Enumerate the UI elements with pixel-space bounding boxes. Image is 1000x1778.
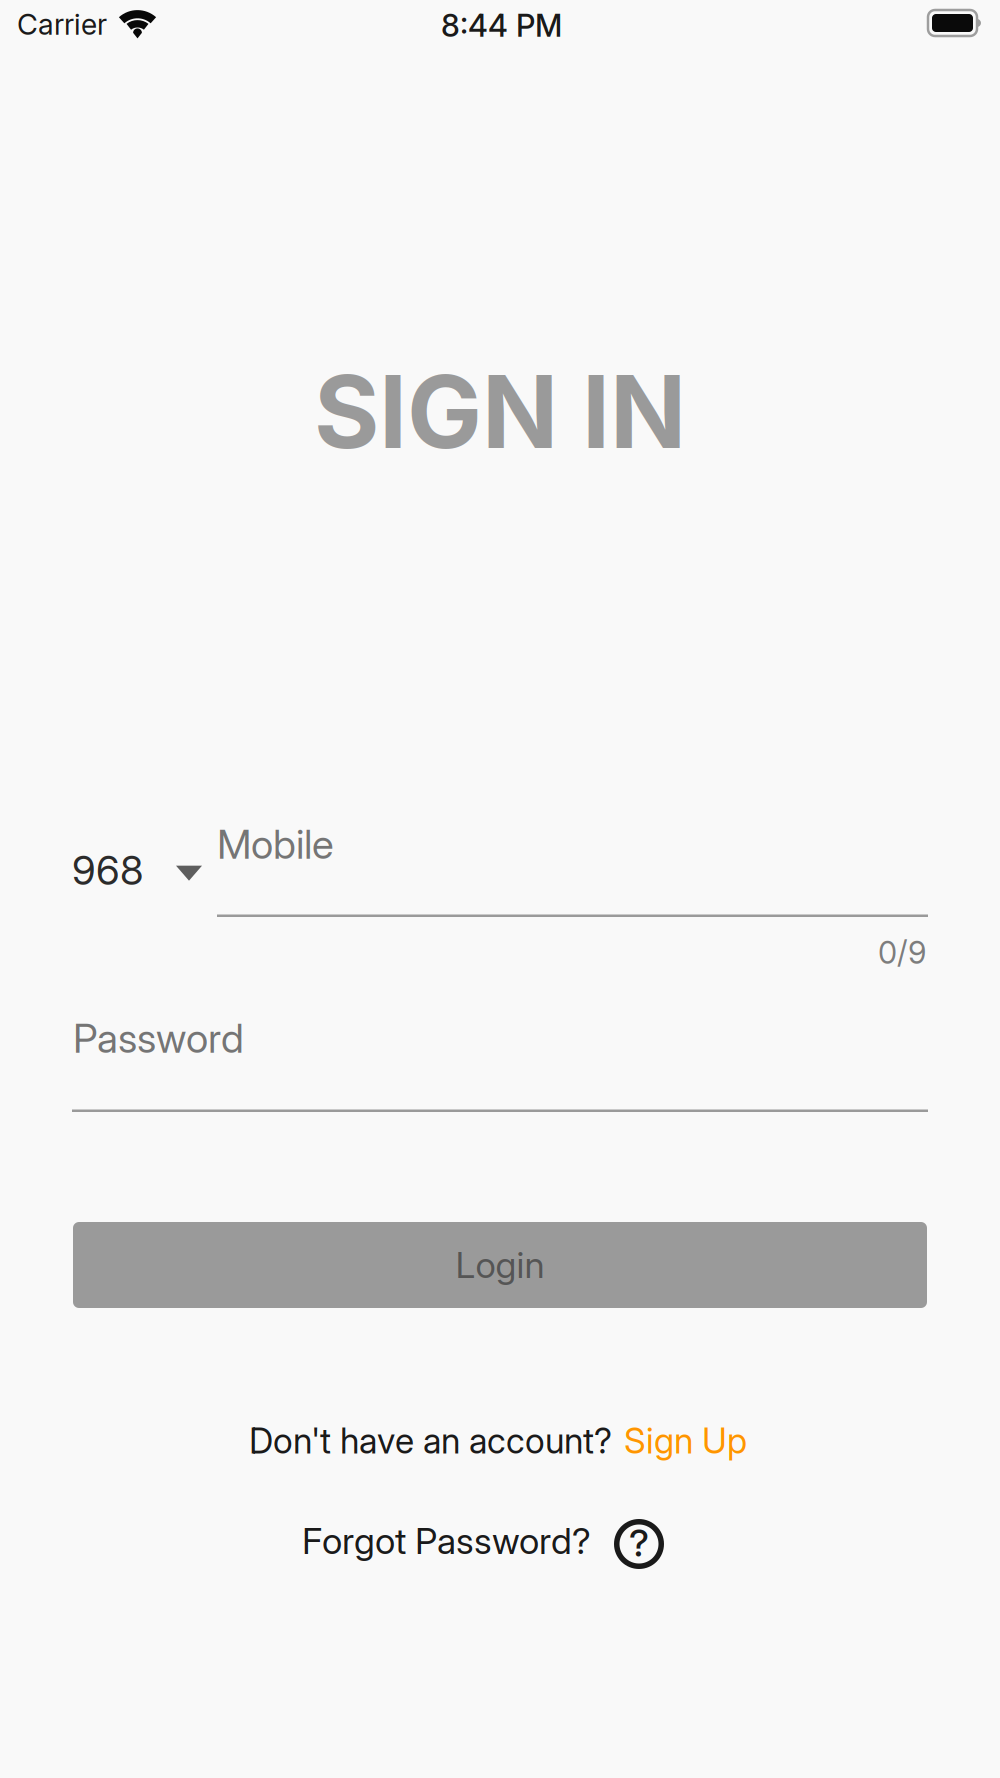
button[interactable]: Country code 968 (72, 846, 202, 894)
staticText: Password (73, 1014, 244, 1062)
button[interactable]: Login (73, 1222, 927, 1308)
staticText: 8:44 PM (441, 7, 562, 44)
button[interactable]: Sign Up (612, 1420, 747, 1462)
staticText: Carrier (17, 7, 107, 42)
button[interactable]: Mobile number (217, 820, 928, 917)
button[interactable]: Forgot Password? (302, 1514, 664, 1569)
staticText: Mobile (217, 820, 334, 868)
staticText: SIGN IN (314, 351, 686, 472)
staticText: Don't have an account? (249, 1420, 612, 1462)
button[interactable]: Password (72, 1014, 928, 1112)
staticText: Login (455, 1243, 544, 1287)
staticText: Forgot Password? (302, 1519, 591, 1563)
staticText: ? (629, 1520, 649, 1566)
staticText: Sign Up (624, 1420, 747, 1462)
staticText: 968 (72, 846, 143, 894)
staticText: 0/9 (878, 934, 926, 971)
